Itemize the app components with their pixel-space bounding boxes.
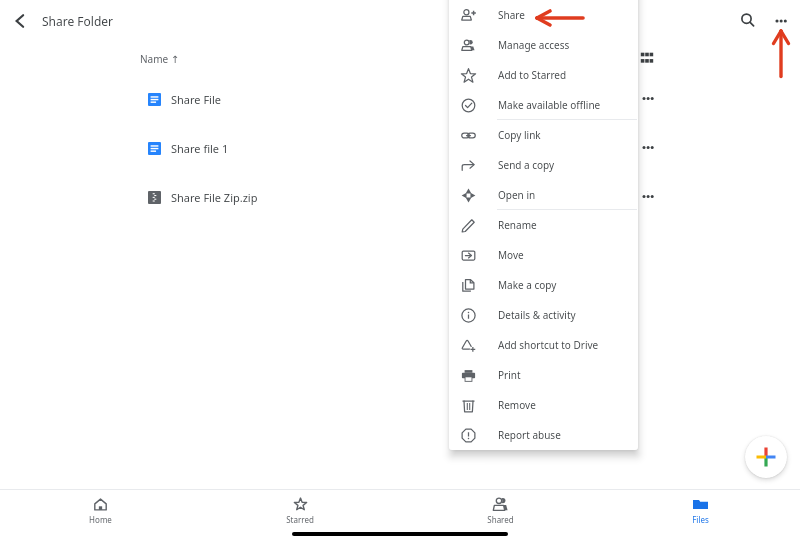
staticText: Add shortcut to Drive bbox=[498, 338, 599, 352]
button[interactable]: More options for Share File Zip.zip bbox=[636, 185, 660, 209]
button[interactable]: Make a copy bbox=[449, 270, 638, 300]
staticText: Share bbox=[498, 8, 525, 22]
staticText: Shared bbox=[487, 514, 514, 525]
button[interactable]: More options for Share file 1 bbox=[636, 136, 660, 160]
staticText: Share File bbox=[171, 92, 221, 107]
button[interactable]: Switch to grid view bbox=[637, 48, 655, 66]
button[interactable]: More options bbox=[769, 8, 793, 32]
button[interactable]: Manage access bbox=[449, 30, 638, 60]
staticText: Open in bbox=[498, 188, 536, 202]
button[interactable]: Rename bbox=[449, 210, 638, 240]
button[interactable]: Share bbox=[449, 0, 638, 30]
staticText: Send a copy bbox=[498, 158, 555, 172]
button[interactable]: Report abuse bbox=[449, 420, 638, 450]
button[interactable]: Add shortcut to Drive bbox=[449, 330, 638, 360]
button[interactable]: Add to Starred bbox=[449, 60, 638, 90]
button[interactable]: Make available offline bbox=[449, 90, 638, 120]
button[interactable]: Shared bbox=[400, 490, 600, 542]
button[interactable]: Copy link bbox=[449, 120, 638, 150]
button[interactable]: Starred bbox=[200, 490, 400, 542]
button[interactable]: Move bbox=[449, 240, 638, 270]
staticText: Rename bbox=[498, 218, 537, 232]
button[interactable]: Back bbox=[8, 9, 32, 33]
staticText: Starred bbox=[286, 514, 314, 525]
button[interactable]: Share File Zip.zip bbox=[148, 181, 630, 213]
staticText: Share Folder bbox=[42, 13, 114, 29]
staticText: Files bbox=[692, 514, 709, 525]
staticText: Make a copy bbox=[498, 278, 557, 292]
staticText: Share file 1 bbox=[171, 141, 229, 156]
button[interactable]: Details & activity bbox=[449, 300, 638, 330]
staticText: Details & activity bbox=[498, 308, 576, 322]
staticText: Share File Zip.zip bbox=[171, 190, 258, 205]
staticText: Remove bbox=[498, 398, 536, 412]
staticText: Name ↑ bbox=[140, 52, 180, 66]
staticText: Move bbox=[498, 248, 524, 262]
staticText: Report abuse bbox=[498, 428, 561, 442]
button[interactable]: Search bbox=[736, 8, 760, 32]
staticText: Manage access bbox=[498, 38, 570, 52]
staticText: Make available offline bbox=[498, 98, 601, 112]
staticText: Copy link bbox=[498, 128, 541, 142]
staticText: Add to Starred bbox=[498, 68, 567, 82]
button[interactable]: Share file 1 bbox=[148, 132, 630, 164]
button[interactable]: Home bbox=[0, 490, 200, 542]
button[interactable]: Print bbox=[449, 360, 638, 390]
button[interactable]: Files bbox=[600, 490, 800, 542]
button[interactable]: More options for Share File bbox=[636, 87, 660, 111]
button[interactable]: Open in bbox=[449, 180, 638, 210]
button[interactable]: Remove bbox=[449, 390, 638, 420]
staticText: Print bbox=[498, 368, 521, 382]
staticText: Home bbox=[89, 514, 112, 525]
button[interactable]: Send a copy bbox=[449, 150, 638, 180]
button[interactable]: Share File bbox=[148, 83, 630, 115]
button[interactable]: Create new bbox=[745, 436, 787, 478]
